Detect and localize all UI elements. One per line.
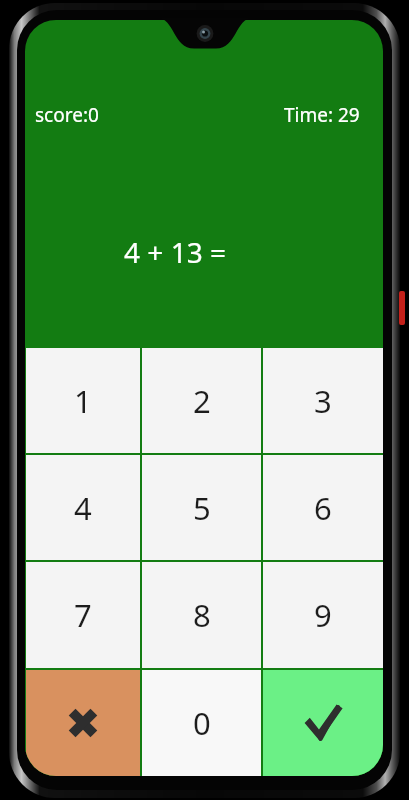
staticText: 3: [314, 380, 332, 422]
button[interactable]: 3: [263, 348, 383, 453]
staticText: Time: 29: [284, 102, 360, 128]
staticText: 8: [193, 594, 211, 636]
staticText: 9: [314, 594, 332, 636]
staticText: 7: [74, 594, 92, 636]
button[interactable]: Clear: [26, 670, 140, 776]
staticText: 5: [193, 487, 211, 529]
staticText: 4: [74, 487, 92, 529]
button[interactable]: 7: [26, 562, 140, 668]
staticText: 1: [74, 380, 92, 422]
button[interactable]: 8: [142, 562, 261, 668]
staticText: 4 + 13 =: [83, 233, 267, 271]
button[interactable]: 6: [263, 455, 383, 560]
button[interactable]: 4: [26, 455, 140, 560]
button[interactable]: 2: [142, 348, 261, 453]
button[interactable]: Submit: [263, 670, 383, 776]
staticText: score:0: [35, 102, 99, 128]
staticText: 0: [193, 702, 211, 744]
button[interactable]: Time: 29: [282, 100, 362, 130]
button[interactable]: 9: [263, 562, 383, 668]
staticText: 2: [193, 380, 211, 422]
button[interactable]: 5: [142, 455, 261, 560]
staticText: 6: [314, 487, 332, 529]
button[interactable]: 0: [142, 670, 261, 776]
button[interactable]: score:0: [33, 100, 101, 130]
button[interactable]: 1: [26, 348, 140, 453]
